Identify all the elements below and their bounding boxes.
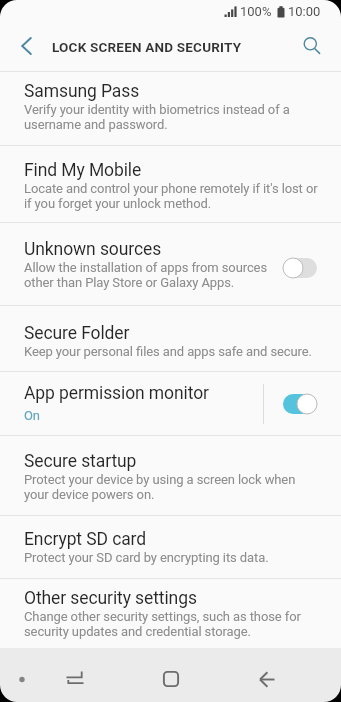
staticText: Keep your personal files and apps safe a… bbox=[24, 344, 312, 359]
staticText: Verify your identity with biometrics ins… bbox=[24, 102, 290, 132]
staticText: App permission monitor bbox=[24, 383, 209, 404]
staticText: Change other security settings, such as … bbox=[24, 609, 301, 639]
button[interactable] bbox=[13, 34, 39, 60]
staticText: Encrypt SD card bbox=[24, 529, 147, 550]
staticText: Find My Mobile bbox=[24, 160, 142, 181]
staticText: 100% bbox=[240, 4, 272, 19]
staticText: Allow the installation of apps from sour… bbox=[24, 260, 268, 290]
staticText: On bbox=[24, 408, 40, 423]
staticText: 10:00 bbox=[288, 4, 321, 19]
button[interactable] bbox=[282, 257, 318, 279]
button[interactable]: Unknown sources bbox=[0, 223, 341, 306]
button[interactable] bbox=[26, 648, 123, 702]
staticText: LOCK SCREEN AND SECURITY bbox=[52, 39, 242, 55]
staticText: Other security settings bbox=[24, 588, 197, 609]
staticText: Samsung Pass bbox=[24, 81, 140, 102]
staticText: Protect your device by using a screen lo… bbox=[24, 472, 296, 502]
button[interactable]: Encrypt SD card bbox=[0, 516, 341, 579]
button[interactable]: App permission monitor bbox=[0, 372, 341, 436]
staticText: Secure Folder bbox=[24, 323, 130, 344]
staticText: Protect your SD card by encrypting its d… bbox=[24, 550, 269, 565]
button[interactable] bbox=[219, 648, 315, 702]
button[interactable] bbox=[123, 648, 219, 702]
staticText: Locate and control your phone remotely i… bbox=[24, 181, 318, 211]
button[interactable]: Samsung Pass bbox=[0, 72, 341, 146]
staticText: Secure startup bbox=[24, 451, 137, 472]
button[interactable]: Find My Mobile bbox=[0, 146, 341, 223]
button[interactable] bbox=[282, 393, 318, 415]
button[interactable]: Secure Folder bbox=[0, 306, 341, 372]
button[interactable]: Other security settings bbox=[0, 579, 341, 648]
button[interactable]: Secure startup bbox=[0, 436, 341, 516]
staticText: Unknown sources bbox=[24, 239, 162, 260]
button[interactable] bbox=[299, 34, 325, 60]
